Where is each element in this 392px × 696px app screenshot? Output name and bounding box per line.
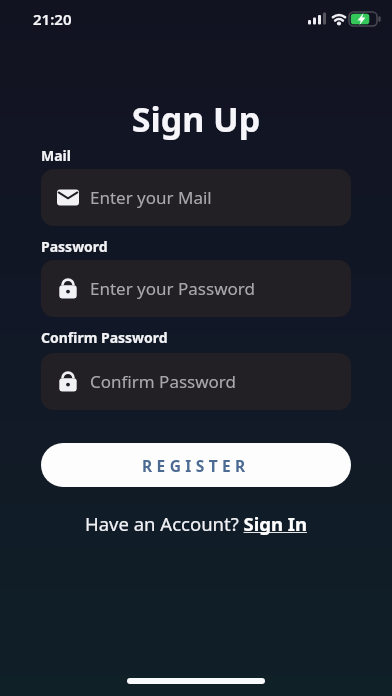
button[interactable]: Have an Account? Sign In xyxy=(85,511,307,536)
staticText: 21:20 xyxy=(33,9,72,29)
staticText: Enter your Password xyxy=(90,277,255,300)
staticText: Confirm Password xyxy=(41,328,168,347)
button[interactable]: REGISTER xyxy=(41,443,351,487)
staticText: Password xyxy=(41,237,108,256)
button[interactable]: Enter your Password xyxy=(41,260,351,317)
staticText: Have an Account? Sign In xyxy=(85,511,307,536)
staticText: Confirm Password xyxy=(90,370,236,393)
staticText: Mail xyxy=(41,146,71,165)
button[interactable]: Enter your Mail xyxy=(41,169,351,226)
staticText: Enter your Mail xyxy=(90,186,212,209)
staticText: Sign Up xyxy=(0,96,392,142)
staticText: REGISTER xyxy=(142,455,250,476)
button[interactable]: Confirm Password xyxy=(41,353,351,410)
